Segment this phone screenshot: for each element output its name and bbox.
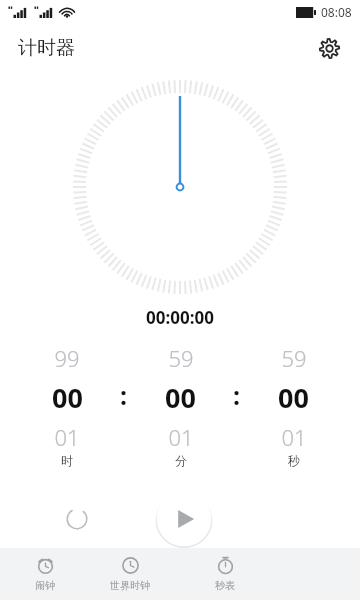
- button[interactable]: 59: [136, 343, 225, 447]
- button[interactable]: Reset: [55, 497, 99, 541]
- button[interactable]: 秒表: [191, 548, 259, 600]
- staticText: 00: [278, 379, 309, 416]
- staticText: 01: [281, 422, 307, 447]
- staticText: 秒: [288, 453, 300, 468]
- staticText: 00: [165, 379, 196, 416]
- staticText: 59: [281, 343, 307, 373]
- staticText: 01: [54, 422, 80, 447]
- staticText: 时: [61, 453, 73, 468]
- staticText: 59: [168, 343, 194, 373]
- button[interactable]: 99: [22, 343, 112, 447]
- staticText: 世界时钟: [110, 579, 150, 592]
- staticText: 00:00:00: [146, 306, 214, 329]
- staticText: 00: [52, 379, 83, 416]
- staticText: 08:08: [321, 4, 352, 20]
- staticText: 01: [168, 422, 194, 447]
- button[interactable]: 闹钟: [11, 548, 79, 600]
- button[interactable]: Settings: [312, 31, 346, 65]
- staticText: 分: [175, 453, 187, 468]
- staticText: 秒表: [215, 579, 235, 592]
- button[interactable]: 59: [249, 343, 338, 447]
- staticText: 99: [54, 343, 80, 373]
- staticText: 闹钟: [35, 579, 55, 592]
- staticText: :: [120, 378, 128, 412]
- staticText: :: [233, 378, 241, 412]
- button[interactable]: Start: [155, 490, 213, 548]
- button[interactable]: 世界时钟: [96, 548, 164, 600]
- staticText: 计时器: [18, 36, 75, 60]
